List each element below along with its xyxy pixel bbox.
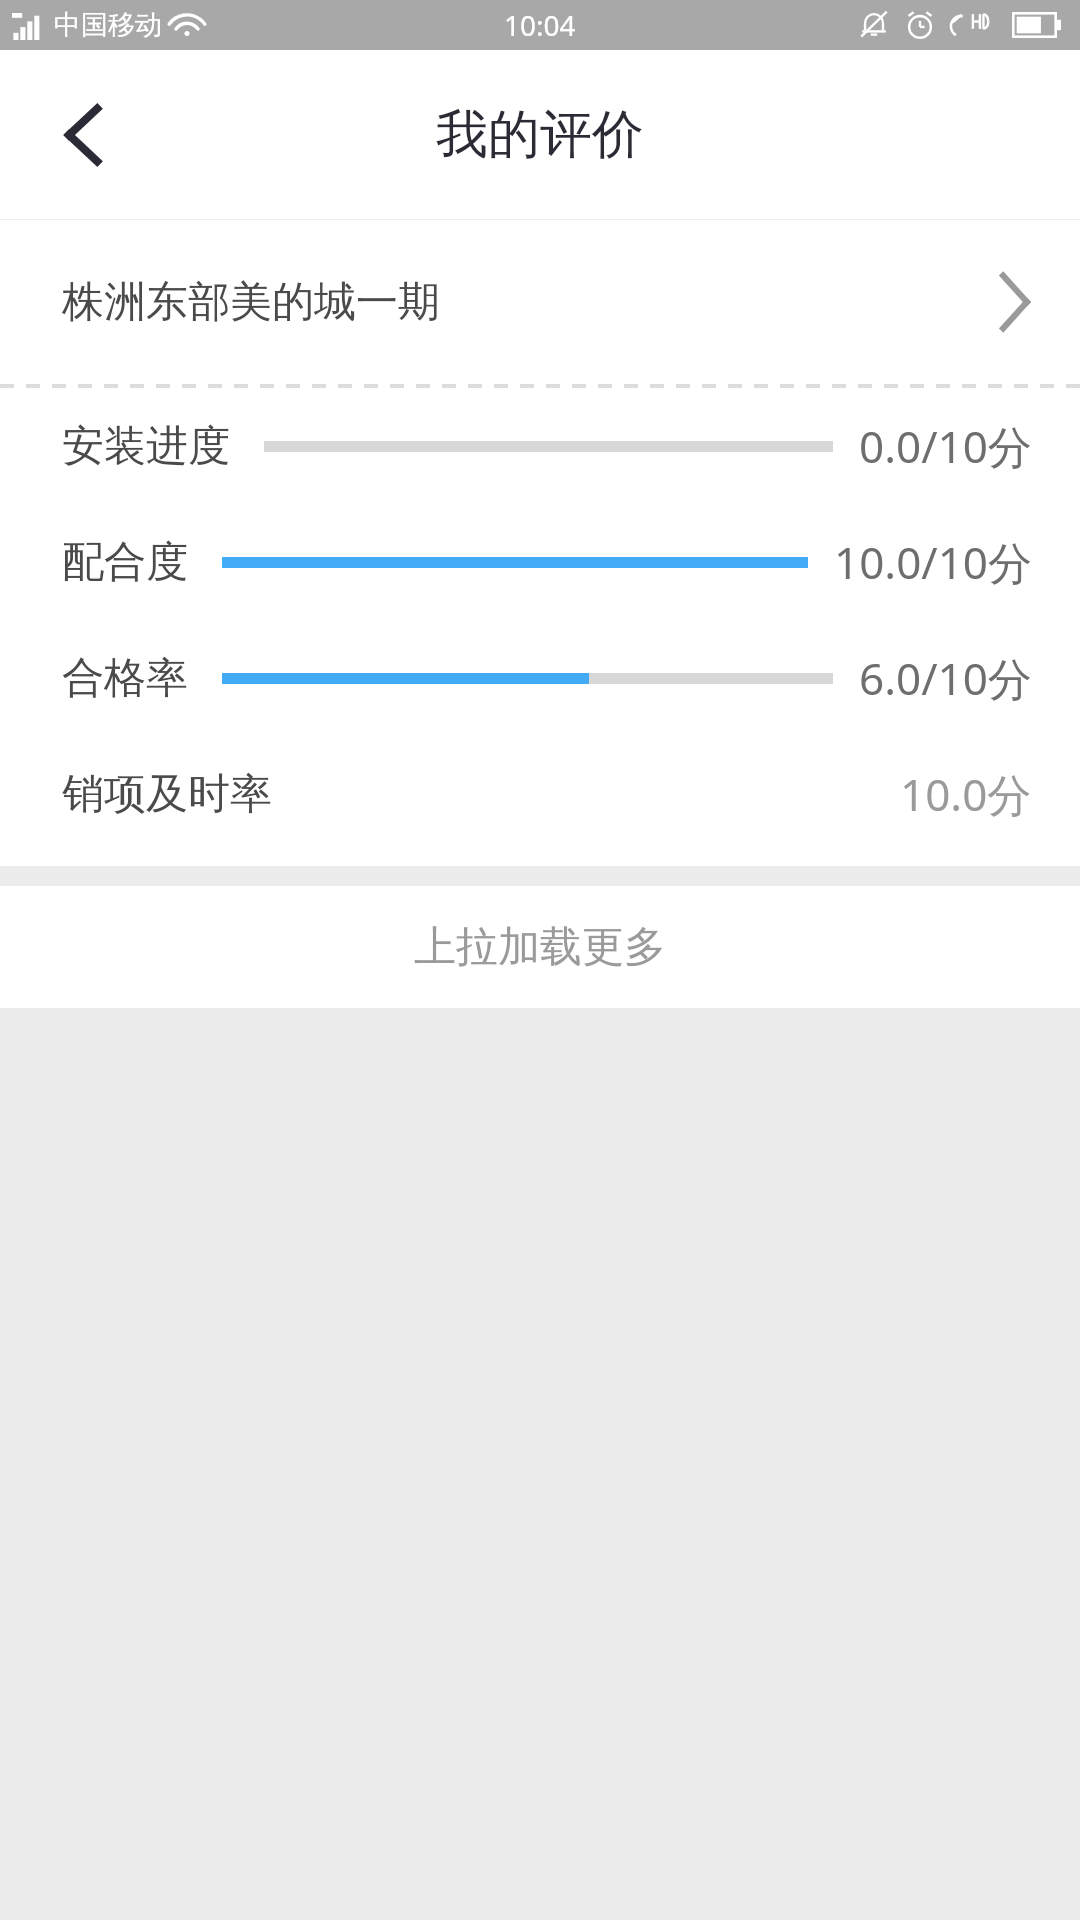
staticText: 10:04 xyxy=(504,6,576,44)
button[interactable]: 返回 xyxy=(36,87,132,183)
staticText: 销项及时率 xyxy=(62,768,272,821)
button[interactable]: 合格率 xyxy=(0,620,1080,736)
button[interactable]: 株洲东部美的城一期 xyxy=(0,220,1080,384)
button[interactable]: 销项及时率 xyxy=(0,736,1080,852)
staticText: 株洲东部美的城一期 xyxy=(62,276,440,329)
staticText: 10.0分 xyxy=(900,764,1032,824)
staticText: 中国移动 xyxy=(54,8,162,42)
staticText: 配合度 xyxy=(62,536,188,589)
staticText: 上拉加载更多 xyxy=(414,921,666,974)
staticText: 我的评价 xyxy=(436,102,644,168)
staticText: 安装进度 xyxy=(62,420,230,473)
button[interactable]: 安装进度 xyxy=(0,388,1080,504)
staticText: 0.0/10分 xyxy=(859,416,1032,476)
button[interactable]: 上拉加载更多 xyxy=(0,886,1080,1008)
staticText: 10.0/10分 xyxy=(834,532,1032,592)
staticText: 合格率 xyxy=(62,652,188,705)
button[interactable]: 配合度 xyxy=(0,504,1080,620)
staticText: 6.0/10分 xyxy=(859,648,1032,708)
